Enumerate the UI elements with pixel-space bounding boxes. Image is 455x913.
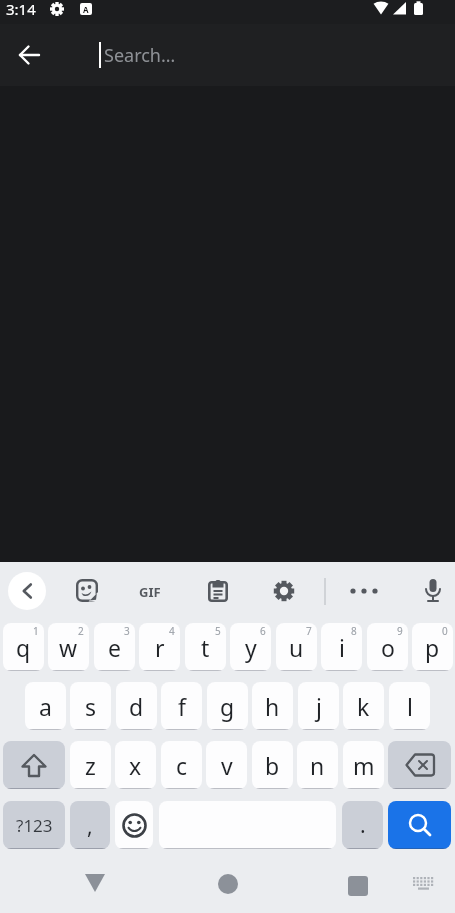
button[interactable] <box>8 34 50 76</box>
staticText: 5 <box>215 624 221 638</box>
button[interactable]: g <box>207 682 248 730</box>
button[interactable]: ?123 <box>3 801 65 849</box>
button[interactable] <box>423 578 443 605</box>
button[interactable]: i <box>321 623 362 671</box>
staticText: d <box>129 691 144 722</box>
staticText: q <box>16 632 31 663</box>
staticText: o <box>381 632 395 663</box>
staticText: 3:14 <box>6 0 36 19</box>
staticText: i <box>339 632 345 663</box>
staticText: k <box>357 691 370 722</box>
staticText: a <box>39 691 52 722</box>
button[interactable] <box>388 801 451 849</box>
button[interactable]: k <box>343 682 384 730</box>
staticText: u <box>289 632 304 663</box>
staticText: z <box>85 750 96 781</box>
staticText: m <box>353 750 375 781</box>
button[interactable]: o <box>367 623 408 671</box>
staticText: 2 <box>78 624 84 638</box>
button[interactable]: l <box>389 682 430 730</box>
staticText: 7 <box>306 624 312 638</box>
staticText: , <box>87 812 93 841</box>
button[interactable]: f <box>161 682 202 730</box>
staticText: . <box>360 811 366 840</box>
staticText: y <box>245 632 257 663</box>
staticText: 3 <box>124 624 130 638</box>
staticText: e <box>108 632 121 663</box>
button[interactable] <box>75 863 115 903</box>
button[interactable] <box>3 741 65 789</box>
button[interactable]: c <box>161 741 202 789</box>
staticText: x <box>129 750 142 781</box>
button[interactable]: GIF <box>139 583 161 601</box>
button[interactable] <box>208 864 248 904</box>
staticText: 0 <box>442 624 448 638</box>
staticText: p <box>425 632 440 663</box>
staticText: 4 <box>169 624 175 638</box>
staticText: b <box>265 750 280 781</box>
button[interactable] <box>410 872 438 894</box>
button[interactable]: w <box>48 623 89 671</box>
staticText: 6 <box>260 624 266 638</box>
button[interactable] <box>208 579 228 602</box>
button[interactable] <box>76 579 99 602</box>
button[interactable]: d <box>116 682 157 730</box>
staticText: v <box>221 750 233 781</box>
button[interactable]: u <box>276 623 317 671</box>
staticText: n <box>310 750 325 781</box>
staticText: 1 <box>33 624 39 638</box>
button[interactable]: m <box>343 741 384 789</box>
button[interactable] <box>388 741 451 789</box>
button[interactable]: e <box>94 623 135 671</box>
button[interactable]: q <box>3 623 44 671</box>
button[interactable] <box>273 580 295 602</box>
staticText: h <box>265 691 280 722</box>
button[interactable] <box>8 572 46 610</box>
button[interactable]: j <box>298 682 339 730</box>
button[interactable]: t <box>185 623 226 671</box>
staticText: w <box>59 632 78 663</box>
button[interactable]: v <box>206 741 247 789</box>
button[interactable]: a <box>25 682 66 730</box>
staticText: c <box>176 750 188 781</box>
button[interactable]: n <box>297 741 338 789</box>
button[interactable]: , <box>70 801 110 849</box>
button[interactable] <box>115 801 153 849</box>
button[interactable]: b <box>252 741 293 789</box>
button[interactable]: p <box>412 623 453 671</box>
button[interactable] <box>159 801 336 849</box>
button[interactable]: s <box>70 682 111 730</box>
staticText: 8 <box>351 624 357 638</box>
button[interactable]: x <box>115 741 156 789</box>
button[interactable]: r <box>139 623 180 671</box>
staticText: ?123 <box>16 814 53 837</box>
staticText: s <box>85 691 97 722</box>
button[interactable]: z <box>70 741 111 789</box>
button[interactable] <box>338 864 378 904</box>
staticText: j <box>316 691 322 722</box>
staticText: t <box>201 632 210 663</box>
staticText: g <box>220 691 235 722</box>
staticText: 9 <box>397 624 403 638</box>
staticText: A <box>83 4 89 15</box>
staticText: Search… <box>104 43 176 68</box>
button[interactable]: y <box>230 623 271 671</box>
button[interactable]: . <box>342 801 383 849</box>
staticText: f <box>178 691 186 722</box>
staticText: l <box>407 691 413 722</box>
staticText: r <box>155 632 165 663</box>
button[interactable]: h <box>252 682 293 730</box>
